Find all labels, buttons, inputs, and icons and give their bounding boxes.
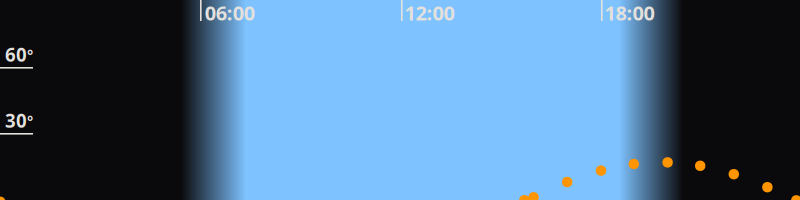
staticText: 12:00 <box>404 0 454 26</box>
staticText: 06:00 <box>205 0 255 26</box>
staticText: 18:00 <box>604 0 654 26</box>
staticText: 60° <box>5 42 33 67</box>
staticText: 30° <box>5 108 33 133</box>
